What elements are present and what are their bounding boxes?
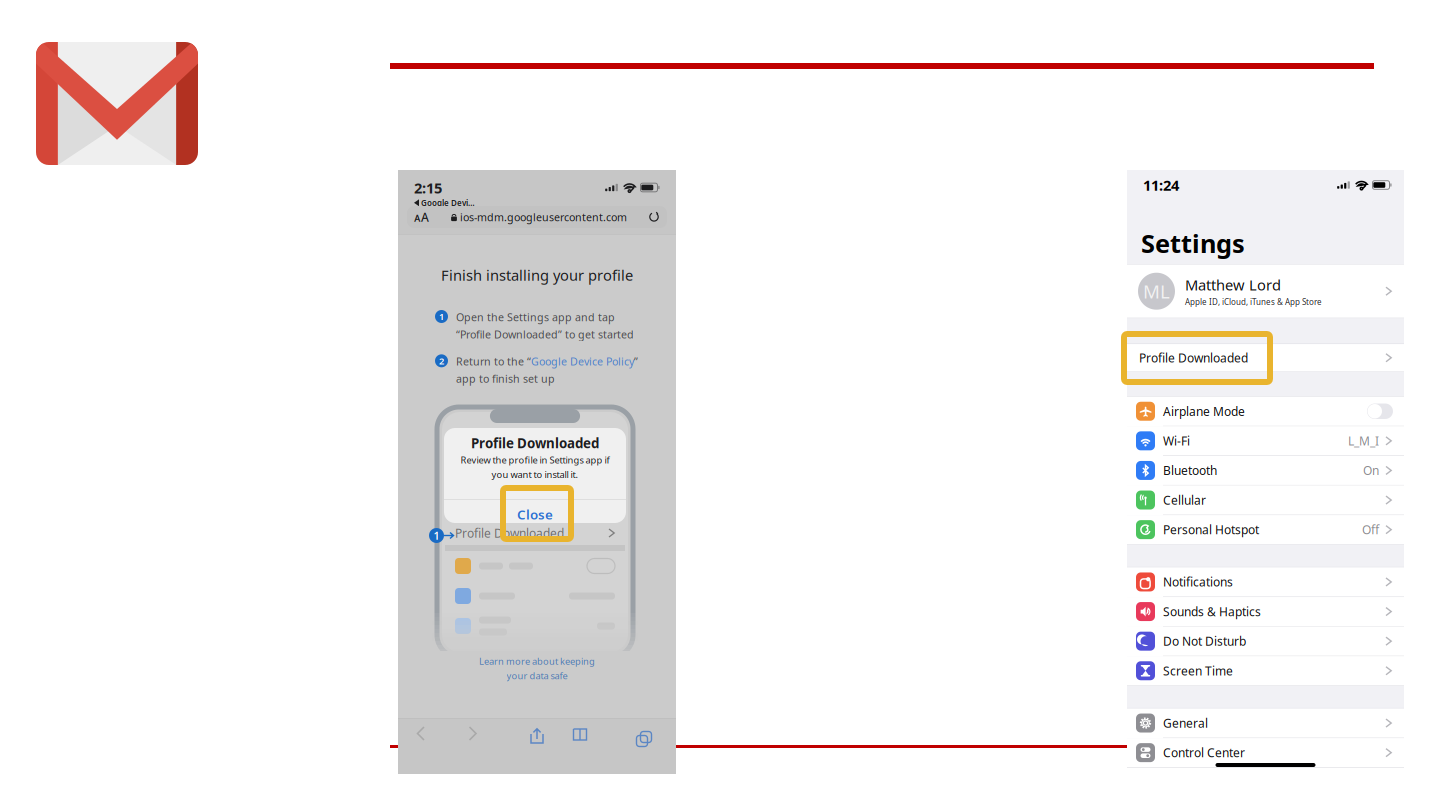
staticText: Return to the “ xyxy=(456,354,531,368)
staticText: Wi-Fi xyxy=(1163,433,1190,449)
button[interactable]: Screen Time xyxy=(1127,656,1404,686)
button[interactable]: General xyxy=(1127,709,1404,738)
button[interactable]: Bookmarks xyxy=(572,726,606,746)
button[interactable]: Control Center xyxy=(1127,738,1404,768)
staticText: Profile Downloaded xyxy=(471,434,599,452)
staticText: 11:24 xyxy=(1143,175,1179,195)
button[interactable]: Profile Downloaded xyxy=(1127,344,1404,372)
staticText: you want to install it. xyxy=(491,468,578,481)
staticText: Do Not Disturb xyxy=(1163,633,1246,649)
staticText: Control Center xyxy=(1163,745,1245,761)
staticText: Personal Hotspot xyxy=(1163,522,1259,538)
staticText: Matthew Lord xyxy=(1185,275,1281,295)
staticText: Learn more about keeping xyxy=(479,655,595,667)
staticText: Review the profile in Settings app if xyxy=(460,454,609,466)
button[interactable]: Notifications xyxy=(1127,567,1404,597)
staticText: L_M_I xyxy=(1348,433,1379,449)
button[interactable]: Back xyxy=(416,726,450,746)
staticText: Bluetooth xyxy=(1163,462,1217,478)
staticText: “Profile Downloaded” to get started xyxy=(456,327,634,341)
staticText: Airplane Mode xyxy=(1163,403,1245,419)
staticText: your data safe xyxy=(506,669,567,682)
staticText: General xyxy=(1163,715,1208,731)
button[interactable]: Airplane Mode xyxy=(1127,397,1404,426)
staticText: Sounds & Haptics xyxy=(1163,604,1261,619)
staticText: Close xyxy=(517,505,553,523)
button[interactable]: Tabs xyxy=(624,726,658,746)
button[interactable]: Sounds & Haptics xyxy=(1127,597,1404,627)
staticText: ML xyxy=(1143,279,1170,304)
staticText: Off xyxy=(1362,522,1379,538)
staticText: Profile Downloaded xyxy=(1139,350,1248,366)
staticText: Finish installing your profile xyxy=(441,265,633,285)
staticText: Google Device Policy xyxy=(531,354,634,368)
staticText: ios-mdm.googleusercontent.com xyxy=(460,210,627,224)
staticText: Google Devi… xyxy=(421,197,475,208)
staticText: app to finish set up xyxy=(456,371,555,386)
button[interactable]: Share xyxy=(520,726,554,746)
button[interactable]: ML xyxy=(1127,265,1404,318)
button[interactable]: Do Not Disturb xyxy=(1127,627,1404,656)
staticText: ᴀA xyxy=(414,209,429,225)
staticText: ” xyxy=(634,354,638,368)
staticText: Settings xyxy=(1141,226,1245,260)
staticText: On xyxy=(1363,462,1379,478)
staticText: 2:15 xyxy=(414,178,442,197)
staticText: 1 xyxy=(433,528,439,543)
staticText: Screen Time xyxy=(1163,663,1233,679)
staticText: Open the Settings app and tap xyxy=(456,310,615,324)
button[interactable]: Wi-Fi xyxy=(1127,426,1404,456)
staticText: 2 xyxy=(439,355,444,367)
button[interactable]: Personal Hotspot xyxy=(1127,515,1404,545)
button[interactable]: Bluetooth xyxy=(1127,456,1404,486)
button[interactable]: Forward xyxy=(468,726,502,746)
staticText: Cellular xyxy=(1163,492,1206,508)
staticText: 1 xyxy=(439,310,444,323)
staticText: Profile Downloaded xyxy=(455,525,564,541)
staticText: Notifications xyxy=(1163,574,1233,590)
button[interactable]: Cellular xyxy=(1127,486,1404,515)
staticText: Apple ID, iCloud, iTunes & App Store xyxy=(1185,297,1322,307)
